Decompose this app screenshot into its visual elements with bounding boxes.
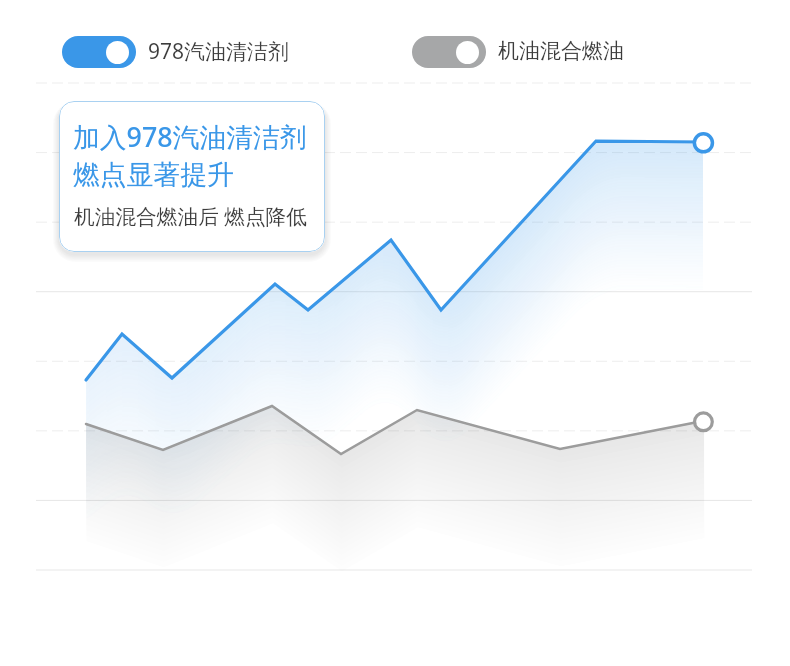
- staticText: 978汽油清洁剂: [148, 37, 290, 66]
- button[interactable]: 机油混合燃油: [412, 36, 624, 68]
- staticText: 机油混合燃油: [498, 38, 624, 64]
- button[interactable]: 加入978汽油清洁剂 燃点显著提升: [59, 101, 325, 252]
- button[interactable]: 978汽油清洁剂: [62, 36, 290, 68]
- staticText: 加入978汽油清洁剂 燃点显著提升: [73, 118, 307, 192]
- staticText: 机油混合燃油后 燃点降低: [74, 202, 307, 230]
